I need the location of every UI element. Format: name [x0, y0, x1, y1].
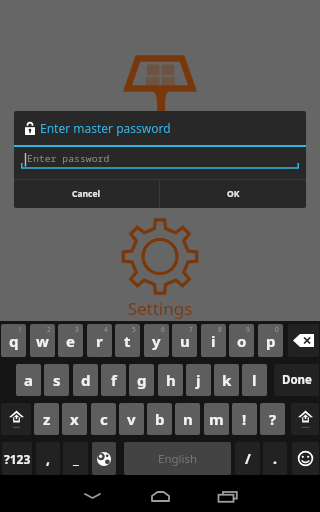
staticText: m	[209, 409, 224, 429]
staticText: 9	[246, 325, 250, 334]
staticText: k	[222, 370, 232, 390]
button[interactable]: j	[186, 364, 211, 396]
staticText: 8	[218, 325, 222, 334]
button[interactable]: m	[204, 403, 229, 435]
staticText: c	[100, 409, 108, 429]
staticText: .	[273, 449, 277, 468]
button[interactable]: ?	[260, 403, 285, 435]
button[interactable]: Emoji	[292, 442, 319, 475]
button[interactable]: Shift	[1, 403, 31, 435]
staticText: j	[196, 370, 201, 390]
button[interactable]: x	[62, 403, 87, 435]
staticText: n	[183, 409, 193, 429]
button[interactable]: l	[242, 364, 267, 396]
button[interactable]: Change keyboard	[92, 442, 116, 475]
button[interactable]: _	[63, 442, 88, 475]
staticText: r	[96, 331, 103, 351]
staticText: t	[124, 331, 131, 351]
button[interactable]: Done	[274, 364, 319, 396]
staticText: 6	[161, 325, 165, 334]
staticText: p	[266, 331, 276, 351]
staticText: 3	[75, 325, 79, 334]
staticText: s	[53, 370, 61, 390]
staticText: e	[66, 331, 75, 351]
button[interactable]: u	[172, 324, 197, 357]
staticText: 4	[104, 325, 108, 334]
staticText: a	[24, 370, 33, 390]
staticText: 5	[132, 325, 136, 334]
button[interactable]: f	[101, 364, 126, 396]
button[interactable]: r	[87, 324, 112, 357]
button[interactable]: i	[201, 324, 226, 357]
staticText: 1	[18, 325, 22, 334]
staticText: h	[166, 370, 176, 390]
button[interactable]: a	[16, 364, 41, 396]
staticText: 2	[47, 325, 51, 334]
button[interactable]: Recent apps	[211, 484, 243, 508]
button[interactable]: p	[258, 324, 283, 357]
staticText: l	[252, 370, 257, 390]
button[interactable]: OK	[160, 180, 306, 208]
button[interactable]: s	[44, 364, 69, 396]
button[interactable]: o	[229, 324, 254, 357]
button[interactable]: ?123	[2, 442, 32, 475]
button[interactable]: Shift	[291, 403, 319, 435]
staticText: Enter password	[27, 152, 110, 165]
button[interactable]: v	[119, 403, 144, 435]
button[interactable]: Hide keyboard	[76, 484, 108, 508]
button[interactable]: b	[147, 403, 172, 435]
staticText: 0	[275, 325, 279, 334]
button[interactable]: !	[232, 403, 257, 435]
button[interactable]: k	[214, 364, 239, 396]
button[interactable]: c	[91, 403, 116, 435]
button[interactable]: Cancel	[14, 180, 159, 208]
button[interactable]: .	[263, 442, 287, 475]
staticText: f	[111, 370, 117, 390]
staticText: Enter master password	[40, 120, 171, 136]
staticText: y	[152, 331, 161, 351]
staticText: o	[237, 331, 247, 351]
staticText: g	[137, 370, 147, 390]
staticText: Cancel	[72, 188, 101, 200]
button[interactable]: q	[1, 324, 26, 357]
button[interactable]: g	[129, 364, 154, 396]
button[interactable]: t	[115, 324, 140, 357]
staticText: ?	[269, 409, 277, 429]
staticText: ?123	[4, 451, 31, 467]
staticText: ,	[46, 449, 50, 468]
button[interactable]: e	[58, 324, 83, 357]
staticText: b	[155, 409, 165, 429]
button[interactable]: w	[30, 324, 55, 357]
staticText: /	[245, 449, 251, 468]
staticText: Settings	[0, 297, 320, 320]
button[interactable]: English	[124, 442, 231, 475]
button[interactable]: n	[175, 403, 200, 435]
staticText: z	[43, 409, 51, 429]
button[interactable]: y	[144, 324, 169, 357]
staticText: English	[158, 451, 198, 467]
staticText: Done	[282, 372, 312, 388]
button[interactable]: d	[73, 364, 98, 396]
button[interactable]: h	[158, 364, 183, 396]
staticText: q	[9, 331, 19, 351]
staticText: x	[70, 409, 79, 429]
staticText: d	[81, 370, 91, 390]
staticText: OK	[227, 188, 240, 200]
button[interactable]: Home	[144, 484, 176, 508]
button[interactable]: Delete	[288, 324, 319, 357]
button[interactable]: ,	[36, 442, 60, 475]
staticText: _	[73, 449, 79, 468]
staticText: 7	[189, 325, 193, 334]
staticText: u	[180, 331, 190, 351]
button[interactable]: /	[235, 442, 260, 475]
staticText: !	[242, 409, 247, 429]
staticText: w	[36, 331, 49, 351]
staticText: v	[127, 409, 136, 429]
button[interactable]: z	[34, 403, 59, 435]
staticText: i	[211, 331, 216, 351]
